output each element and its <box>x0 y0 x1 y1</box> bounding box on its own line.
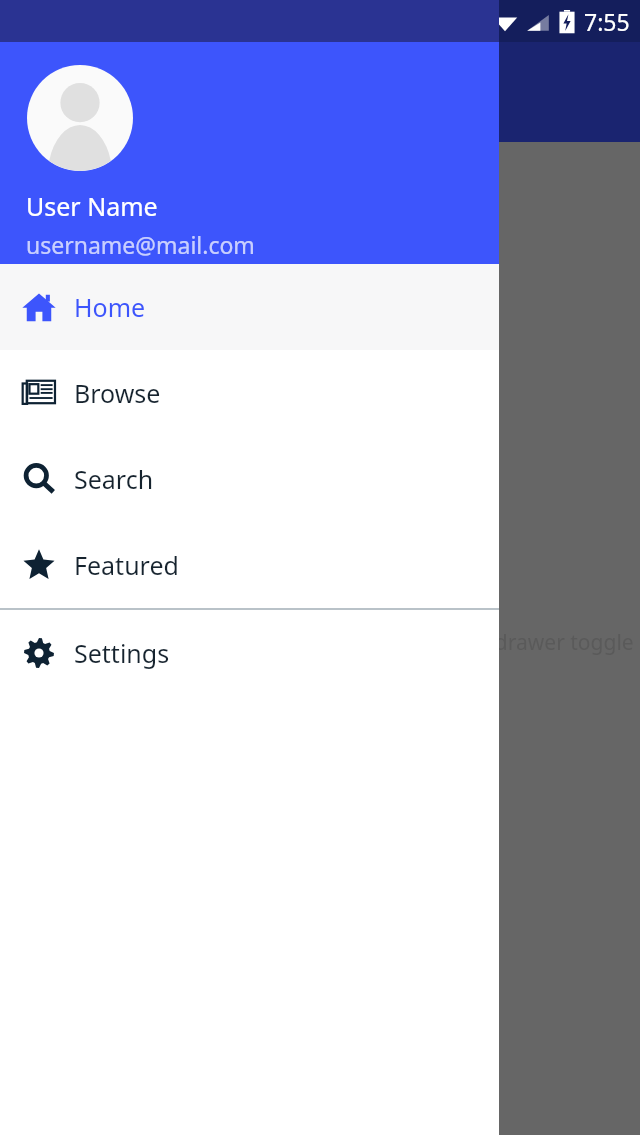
button[interactable]: Settings <box>0 610 499 696</box>
staticText: User Name <box>26 189 158 223</box>
staticText: Settings <box>74 636 170 670</box>
staticText: Home <box>74 290 146 324</box>
button[interactable]: Featured <box>0 522 499 608</box>
staticText: <!-- use the drawer toggle --> <box>380 628 640 686</box>
staticText: 7:55 <box>584 6 630 37</box>
other: Profile photo <box>27 65 133 171</box>
staticText: Browse <box>74 376 161 410</box>
button[interactable]: Home <box>0 264 499 350</box>
staticText: username@mail.com <box>26 229 255 260</box>
staticText: Search <box>74 462 154 496</box>
button[interactable]: Browse <box>0 350 499 436</box>
button[interactable]: Search <box>0 436 499 522</box>
staticText: Featured <box>74 548 179 582</box>
